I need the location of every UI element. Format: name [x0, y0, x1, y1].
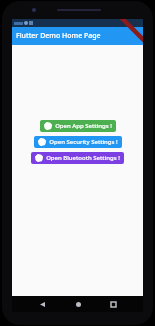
button[interactable]: Back [36, 298, 48, 310]
button[interactable]: Open App Settings ! [40, 120, 116, 132]
staticText: Open Security Settings ! [49, 138, 118, 146]
staticText: Flutter Demo Home Page [16, 31, 101, 41]
button[interactable]: Home [72, 298, 84, 310]
button[interactable]: Open Bluetooth Settings ! [31, 152, 124, 164]
staticText: Open App Settings ! [55, 122, 112, 130]
button[interactable]: Recent apps [107, 298, 119, 310]
button[interactable]: Open Security Settings ! [34, 136, 122, 148]
staticText: Open Bluetooth Settings ! [46, 154, 120, 162]
